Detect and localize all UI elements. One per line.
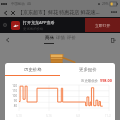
- button[interactable]: 立即打开: [85, 18, 120, 32]
- staticText: 评价: [67, 35, 76, 41]
- staticText: 更优惠的价格: [23, 27, 44, 31]
- button[interactable]: 商品: [43, 35, 55, 44]
- staticText: 立即打开: [95, 23, 111, 28]
- staticText: 80: [6, 104, 17, 108]
- staticText: 更多报价: [79, 67, 97, 73]
- staticText: 90: [6, 99, 17, 103]
- button[interactable]: Back: [2, 9, 9, 16]
- staticText: 历史价格: [24, 67, 42, 73]
- staticText: ¥98.00: [100, 78, 112, 83]
- button[interactable]: 历史价格: [5, 63, 60, 76]
- staticText: 29%: [102, 2, 109, 6]
- staticText: 6-8: [76, 114, 81, 118]
- button[interactable]: Dismiss banner: [2, 22, 8, 28]
- button[interactable]: 评价: [66, 35, 77, 44]
- staticText: 4G: [27, 2, 31, 6]
- button[interactable]: 详情: [55, 35, 66, 44]
- staticText: 打开京东APP查看: [23, 20, 55, 25]
- button[interactable]: Back: [4, 36, 11, 43]
- staticText: 【京东超市】鲜花 特惠花店 鲜花速...: [18, 9, 100, 16]
- staticText: 100: [6, 94, 17, 98]
- staticText: 历史最低价: [81, 79, 98, 83]
- staticText: 详情: [56, 35, 65, 41]
- staticText: 5-16: [46, 114, 52, 118]
- staticText: 11-2: [105, 114, 111, 118]
- staticText: 商品: [45, 35, 54, 41]
- button[interactable]: Close: [9, 9, 16, 16]
- staticText: 中国移动: [11, 2, 25, 6]
- staticText: 5-10: [16, 114, 22, 118]
- staticText: 120: [6, 84, 17, 88]
- button[interactable]: 更多报价: [60, 63, 115, 76]
- button[interactable]: Share: [109, 36, 117, 44]
- staticText: 110: [6, 89, 17, 93]
- button[interactable]: More options: [110, 8, 118, 16]
